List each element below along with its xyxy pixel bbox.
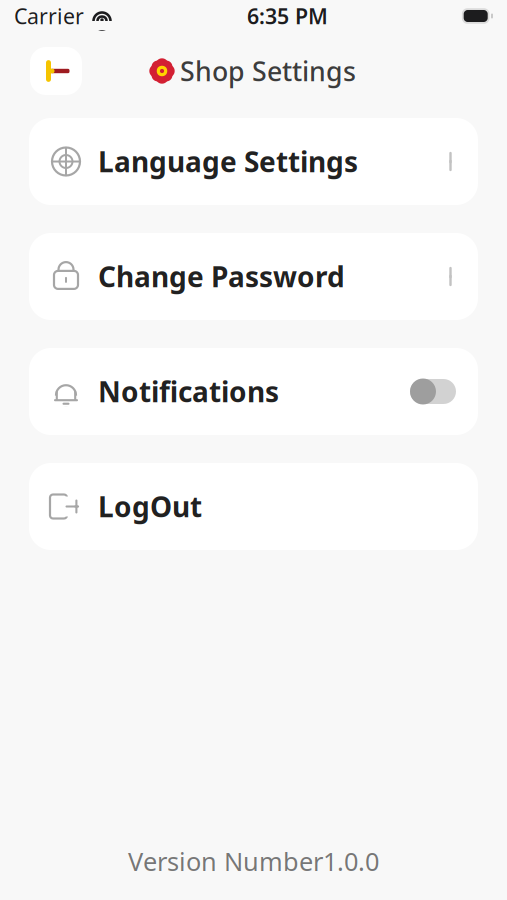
button[interactable]: LogOut xyxy=(29,463,478,550)
button[interactable]: Back xyxy=(30,47,82,95)
staticText: Carrier xyxy=(14,2,84,30)
staticText: Version Number1.0.0 xyxy=(128,844,379,878)
button[interactable]: Notifications xyxy=(29,348,478,435)
staticText: 6:35 PM xyxy=(247,2,328,30)
staticText: Language Settings xyxy=(98,143,358,180)
button[interactable]: Change Password xyxy=(29,233,478,320)
staticText: Notifications xyxy=(98,373,279,410)
button[interactable]: Language Settings xyxy=(29,118,478,205)
staticText: LogOut xyxy=(98,488,202,525)
staticText: Shop Settings xyxy=(180,53,356,89)
staticText: Change Password xyxy=(98,258,345,295)
